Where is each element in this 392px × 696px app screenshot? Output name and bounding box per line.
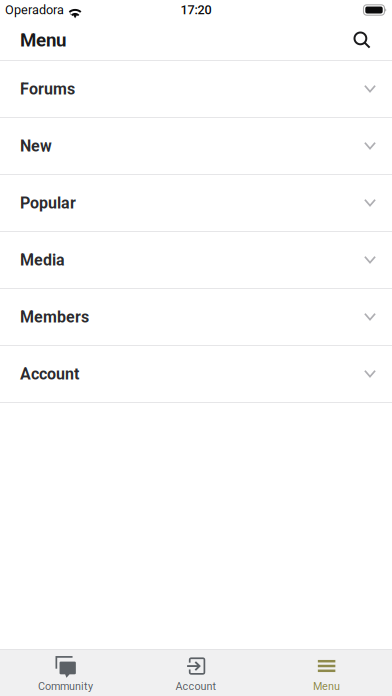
button[interactable]: Members [0, 289, 392, 346]
staticText: New [20, 137, 52, 155]
button[interactable]: Search [342, 20, 382, 60]
button[interactable]: Account [131, 650, 261, 696]
button[interactable]: Popular [0, 175, 392, 232]
button[interactable]: Media [0, 232, 392, 289]
staticText: Account [175, 680, 216, 693]
staticText: Media [20, 251, 65, 269]
staticText: Members [20, 308, 89, 326]
staticText: Forums [20, 80, 75, 98]
staticText: Operadora [5, 3, 64, 17]
button[interactable]: Community [0, 650, 131, 696]
staticText: Community [38, 680, 93, 693]
button[interactable]: Forums [0, 61, 392, 118]
staticText: Popular [20, 194, 76, 212]
button[interactable]: Account [0, 346, 392, 403]
staticText: Account [20, 365, 79, 383]
staticText: Menu [313, 680, 340, 693]
staticText: Menu [20, 29, 66, 51]
staticText: 17:20 [180, 3, 211, 17]
button[interactable]: Menu [261, 650, 392, 696]
button[interactable]: New [0, 118, 392, 175]
